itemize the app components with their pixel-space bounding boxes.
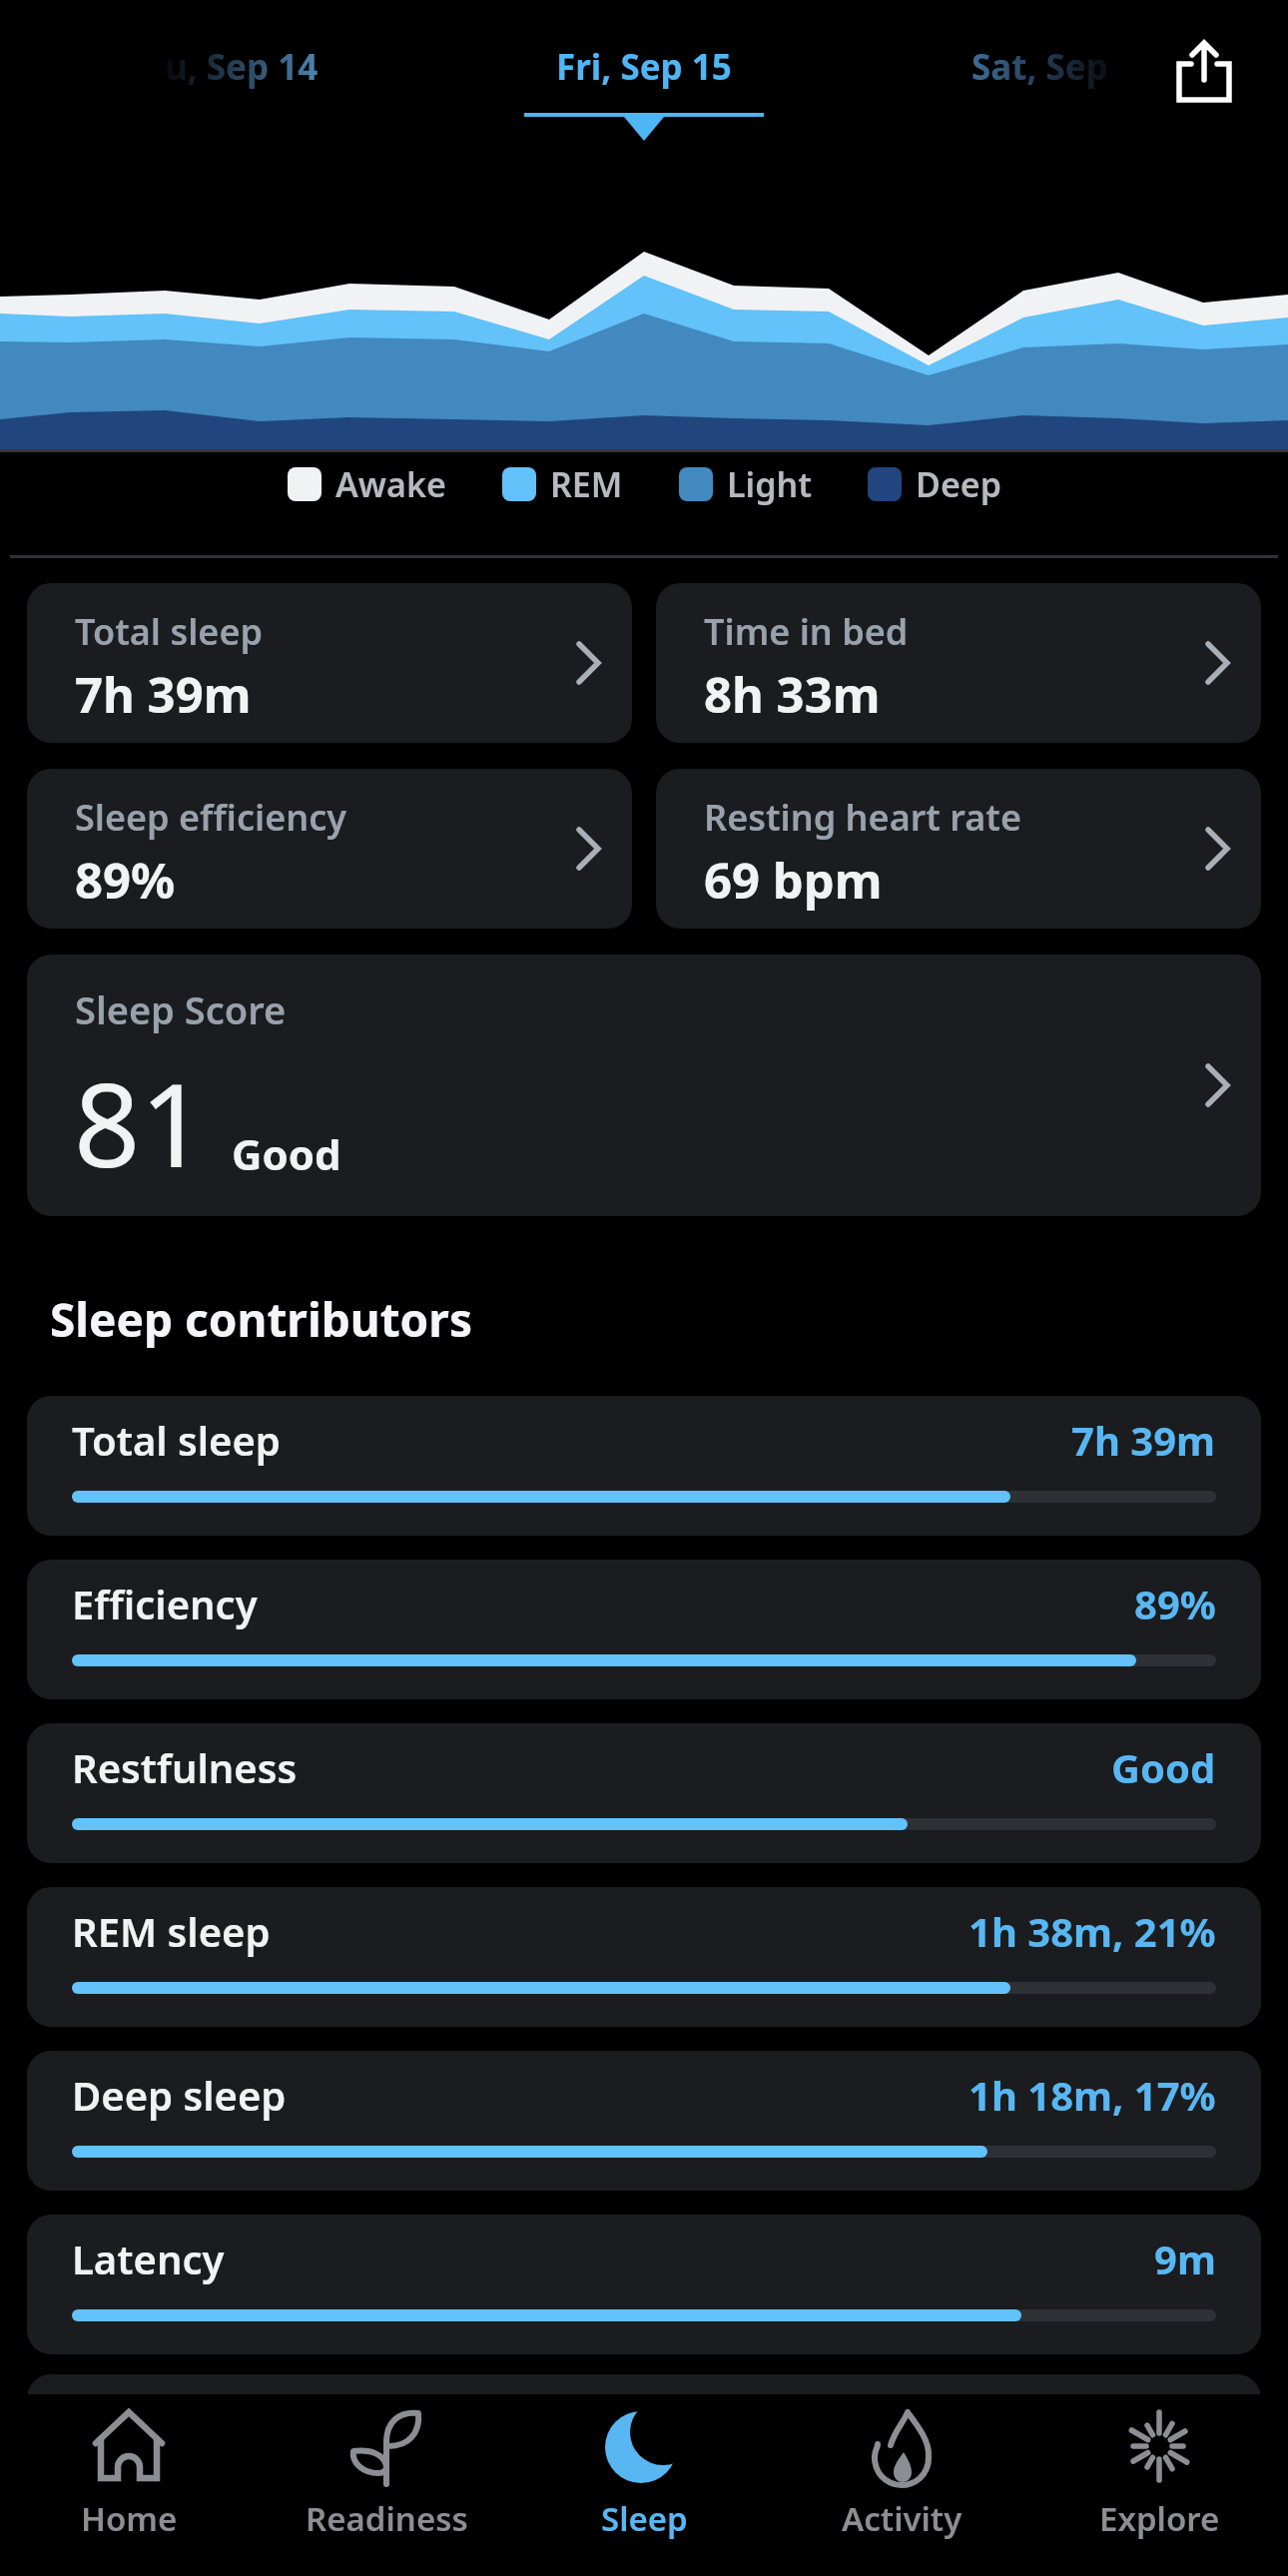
staticText: Total sleep <box>72 1413 281 1467</box>
staticText: Home <box>81 2496 178 2541</box>
staticText: Time in bed <box>704 607 909 656</box>
staticText: Deep <box>916 461 1001 507</box>
button[interactable]: Restfulness <box>27 1723 1261 1863</box>
staticText: Total sleep <box>75 607 263 656</box>
button[interactable]: Time in bed <box>656 583 1261 743</box>
staticText: Restfulness <box>72 1740 298 1794</box>
staticText: Sleep efficiency <box>75 793 347 842</box>
button[interactable] <box>1173 40 1235 104</box>
staticText: Sat, Sep <box>971 43 1108 91</box>
staticText: 9m <box>1154 2232 1216 2285</box>
button[interactable]: Sleep Score <box>27 955 1261 1216</box>
staticText: REM sleep <box>72 1904 271 1958</box>
staticText: Good <box>232 1125 341 1182</box>
staticText: Awake <box>335 461 446 507</box>
staticText: Sleep contributors <box>50 1288 473 1351</box>
staticText: Sleep <box>601 2496 688 2541</box>
staticText: Sleep Score <box>75 983 287 1035</box>
staticText: Readiness <box>306 2496 468 2541</box>
staticText: 7h 39m <box>1071 1413 1216 1467</box>
staticText: 1h 18m, 17% <box>968 2068 1216 2122</box>
staticText: Activity <box>842 2496 963 2541</box>
button[interactable]: Sleep <box>515 2406 773 2541</box>
staticText: Efficiency <box>72 1577 258 1630</box>
staticText: Good <box>1111 1740 1216 1794</box>
button[interactable]: Activity <box>773 2406 1030 2541</box>
button[interactable]: Latency <box>27 2215 1261 2354</box>
staticText: 69 bpm <box>704 847 883 914</box>
staticText: 8h 33m <box>704 661 881 728</box>
button[interactable]: Total sleep <box>27 583 632 743</box>
staticText: Deep sleep <box>72 2068 287 2122</box>
staticText: u, Sep 14 <box>165 43 319 91</box>
button[interactable]: Efficiency <box>27 1560 1261 1699</box>
button[interactable]: REM sleep <box>27 1887 1261 2027</box>
staticText: 89% <box>1134 1577 1216 1630</box>
staticText: Latency <box>72 2232 225 2285</box>
button[interactable]: Sleep efficiency <box>27 769 632 929</box>
staticText: 1h 38m, 21% <box>968 1904 1216 1958</box>
staticText: Light <box>727 461 812 507</box>
staticText: Resting heart rate <box>704 793 1021 842</box>
staticText: 81 <box>74 1043 207 1201</box>
button[interactable]: Readiness <box>258 2406 515 2541</box>
staticText: 89% <box>75 847 176 914</box>
button[interactable]: Resting heart rate <box>656 769 1261 929</box>
staticText: Explore <box>1099 2496 1220 2541</box>
button[interactable]: Deep sleep <box>27 2051 1261 2191</box>
button[interactable]: Total sleep <box>27 1396 1261 1536</box>
button[interactable]: Explore <box>1030 2406 1288 2541</box>
staticText: REM <box>550 461 623 507</box>
staticText: Fri, Sep 15 <box>556 43 732 91</box>
button[interactable]: Home <box>0 2406 258 2541</box>
button[interactable]: Fri, Sep 15 <box>556 43 732 91</box>
staticText: 7h 39m <box>75 661 252 728</box>
